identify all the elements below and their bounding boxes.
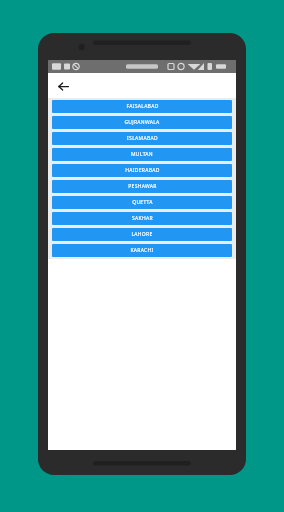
staticText: KARACHI [130, 247, 154, 254]
staticText: HAIDERABAD [125, 167, 160, 174]
staticText: PESHAWAR [128, 183, 157, 190]
staticText: FAISALABAD [126, 103, 159, 110]
button[interactable]: FAISALABAD [52, 100, 232, 113]
button[interactable]: SAKHAR [52, 212, 232, 225]
button[interactable]: PESHAWAR [52, 180, 232, 193]
button[interactable]: ISLAMABAD [52, 132, 232, 145]
staticText: ISLAMABAD [127, 135, 158, 142]
staticText: LAHORE [131, 231, 153, 238]
button[interactable]: KARACHI [52, 244, 232, 257]
staticText: QUETTA [132, 199, 153, 206]
staticText: MULTAN [131, 151, 153, 158]
button[interactable]: GUJRANWALA [52, 116, 232, 129]
staticText: GUJRANWALA [124, 119, 160, 126]
button[interactable]: QUETTA [52, 196, 232, 209]
button[interactable]: LAHORE [52, 228, 232, 241]
button[interactable]: Back [53, 76, 73, 96]
button[interactable]: HAIDERABAD [52, 164, 232, 177]
staticText: SAKHAR [132, 215, 153, 222]
button[interactable]: MULTAN [52, 148, 232, 161]
